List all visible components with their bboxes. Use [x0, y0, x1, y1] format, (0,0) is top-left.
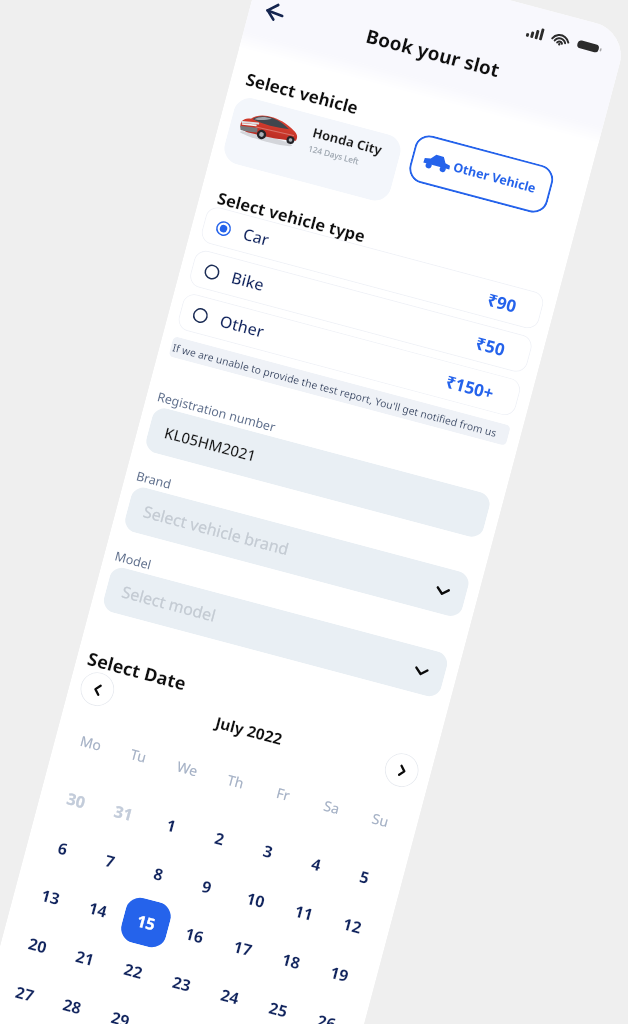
staticText: Bike	[229, 266, 267, 296]
staticText: 23	[170, 971, 194, 997]
button[interactable]: 24	[202, 968, 258, 1024]
button[interactable]: 6	[35, 821, 91, 877]
button[interactable]: 14	[69, 881, 126, 938]
staticText: 22	[122, 958, 146, 984]
staticText: Sa	[322, 796, 342, 818]
staticText: 16	[183, 922, 207, 948]
staticText: ₹90	[485, 288, 520, 318]
staticText: 17	[231, 935, 255, 961]
staticText: 28	[60, 993, 84, 1019]
staticText: We	[175, 757, 200, 780]
staticText: Select Date	[85, 646, 190, 696]
staticText: 3	[261, 840, 276, 863]
button[interactable]: 2	[192, 811, 248, 867]
button[interactable]: 21	[57, 930, 113, 986]
button[interactable]: Select model	[101, 565, 450, 699]
staticText: 13	[39, 884, 63, 910]
staticText: 15	[134, 909, 158, 936]
staticText: Tu	[128, 744, 149, 767]
button[interactable]: 31	[95, 785, 151, 841]
button[interactable]: Select vehicle brand	[122, 485, 471, 619]
staticText: ₹50	[473, 331, 508, 361]
button[interactable]: 27	[0, 965, 53, 1022]
button[interactable]: 7	[82, 833, 139, 889]
button[interactable]: 5	[337, 849, 393, 905]
button[interactable]: 12	[324, 897, 380, 954]
staticText: 7	[103, 849, 118, 873]
staticText: 29	[109, 1006, 133, 1024]
button[interactable]: 8	[131, 846, 187, 902]
button[interactable]: 19	[311, 946, 367, 1002]
button[interactable]: 4	[288, 836, 345, 893]
button[interactable]: Car	[199, 204, 546, 331]
button[interactable]: 15	[118, 894, 174, 951]
button[interactable]: 22	[105, 943, 161, 999]
staticText: 11	[292, 900, 316, 926]
staticText: Fr	[274, 783, 293, 805]
staticText: 2	[212, 827, 228, 851]
button[interactable]: 28	[44, 978, 100, 1024]
button[interactable]: 29	[92, 991, 148, 1024]
staticText: 31	[112, 800, 136, 826]
button[interactable]: 16	[166, 907, 222, 963]
button[interactable]: 18	[263, 933, 319, 989]
button[interactable]: 13	[22, 869, 78, 925]
staticText: Brand	[134, 467, 174, 493]
staticText: 12	[340, 913, 364, 939]
staticText: 30	[64, 787, 88, 813]
staticText: Mo	[78, 731, 104, 755]
staticText: Book your slot	[363, 23, 502, 83]
button[interactable]: Previous month	[76, 668, 118, 710]
button[interactable]: Other	[176, 291, 523, 418]
staticText: Select vehicle brand	[141, 500, 291, 560]
button[interactable]: Honda City	[221, 94, 404, 204]
staticText: Car	[241, 223, 272, 251]
staticText: 27	[13, 981, 37, 1007]
button[interactable]: 26	[298, 994, 354, 1024]
staticText: July 2022	[213, 711, 285, 749]
button[interactable]: Bike	[187, 248, 534, 374]
staticText: 20	[26, 932, 50, 958]
button[interactable]: 1	[143, 798, 200, 854]
staticText: Model	[113, 547, 153, 573]
staticText: 4	[309, 852, 324, 876]
button[interactable]: 23	[153, 955, 210, 1012]
staticText: Select model	[119, 581, 219, 627]
button[interactable]: 3	[240, 823, 296, 880]
button[interactable]: Other Vehicle	[406, 132, 557, 216]
staticText: 10	[244, 887, 268, 913]
staticText: 6	[55, 837, 71, 861]
button[interactable]: KL05HM2021	[143, 405, 492, 540]
staticText: Select vehicle	[243, 67, 361, 119]
staticText: Th	[225, 770, 246, 793]
staticText: If we are unable to provide the test rep…	[171, 340, 498, 440]
staticText: Honda City	[311, 123, 385, 159]
staticText: 26	[315, 1009, 339, 1024]
staticText: Other	[217, 310, 267, 342]
staticText: 14	[86, 897, 110, 923]
staticText: Registration number	[155, 388, 278, 436]
staticText: 24	[218, 984, 242, 1010]
staticText: 18	[279, 948, 303, 974]
staticText: 1	[164, 814, 179, 838]
button[interactable]: 20	[9, 917, 66, 973]
button[interactable]: Next month	[381, 749, 422, 791]
staticText: 8	[151, 862, 166, 886]
button[interactable]: Back	[254, 0, 296, 33]
button[interactable]: 30	[48, 772, 104, 828]
button[interactable]: 17	[214, 920, 271, 976]
staticText: Select vehicle type	[215, 186, 369, 247]
staticText: 19	[328, 961, 352, 987]
staticText: 21	[73, 945, 97, 971]
button[interactable]: 9	[179, 859, 235, 915]
staticText: Su	[370, 809, 391, 831]
staticText: 9	[199, 875, 215, 899]
button[interactable]: 25	[250, 981, 306, 1024]
button[interactable]: 10	[227, 872, 284, 928]
staticText: KL05HM2021	[162, 422, 258, 466]
staticText: 124 Days Left	[307, 142, 360, 166]
button[interactable]: 11	[276, 885, 332, 941]
